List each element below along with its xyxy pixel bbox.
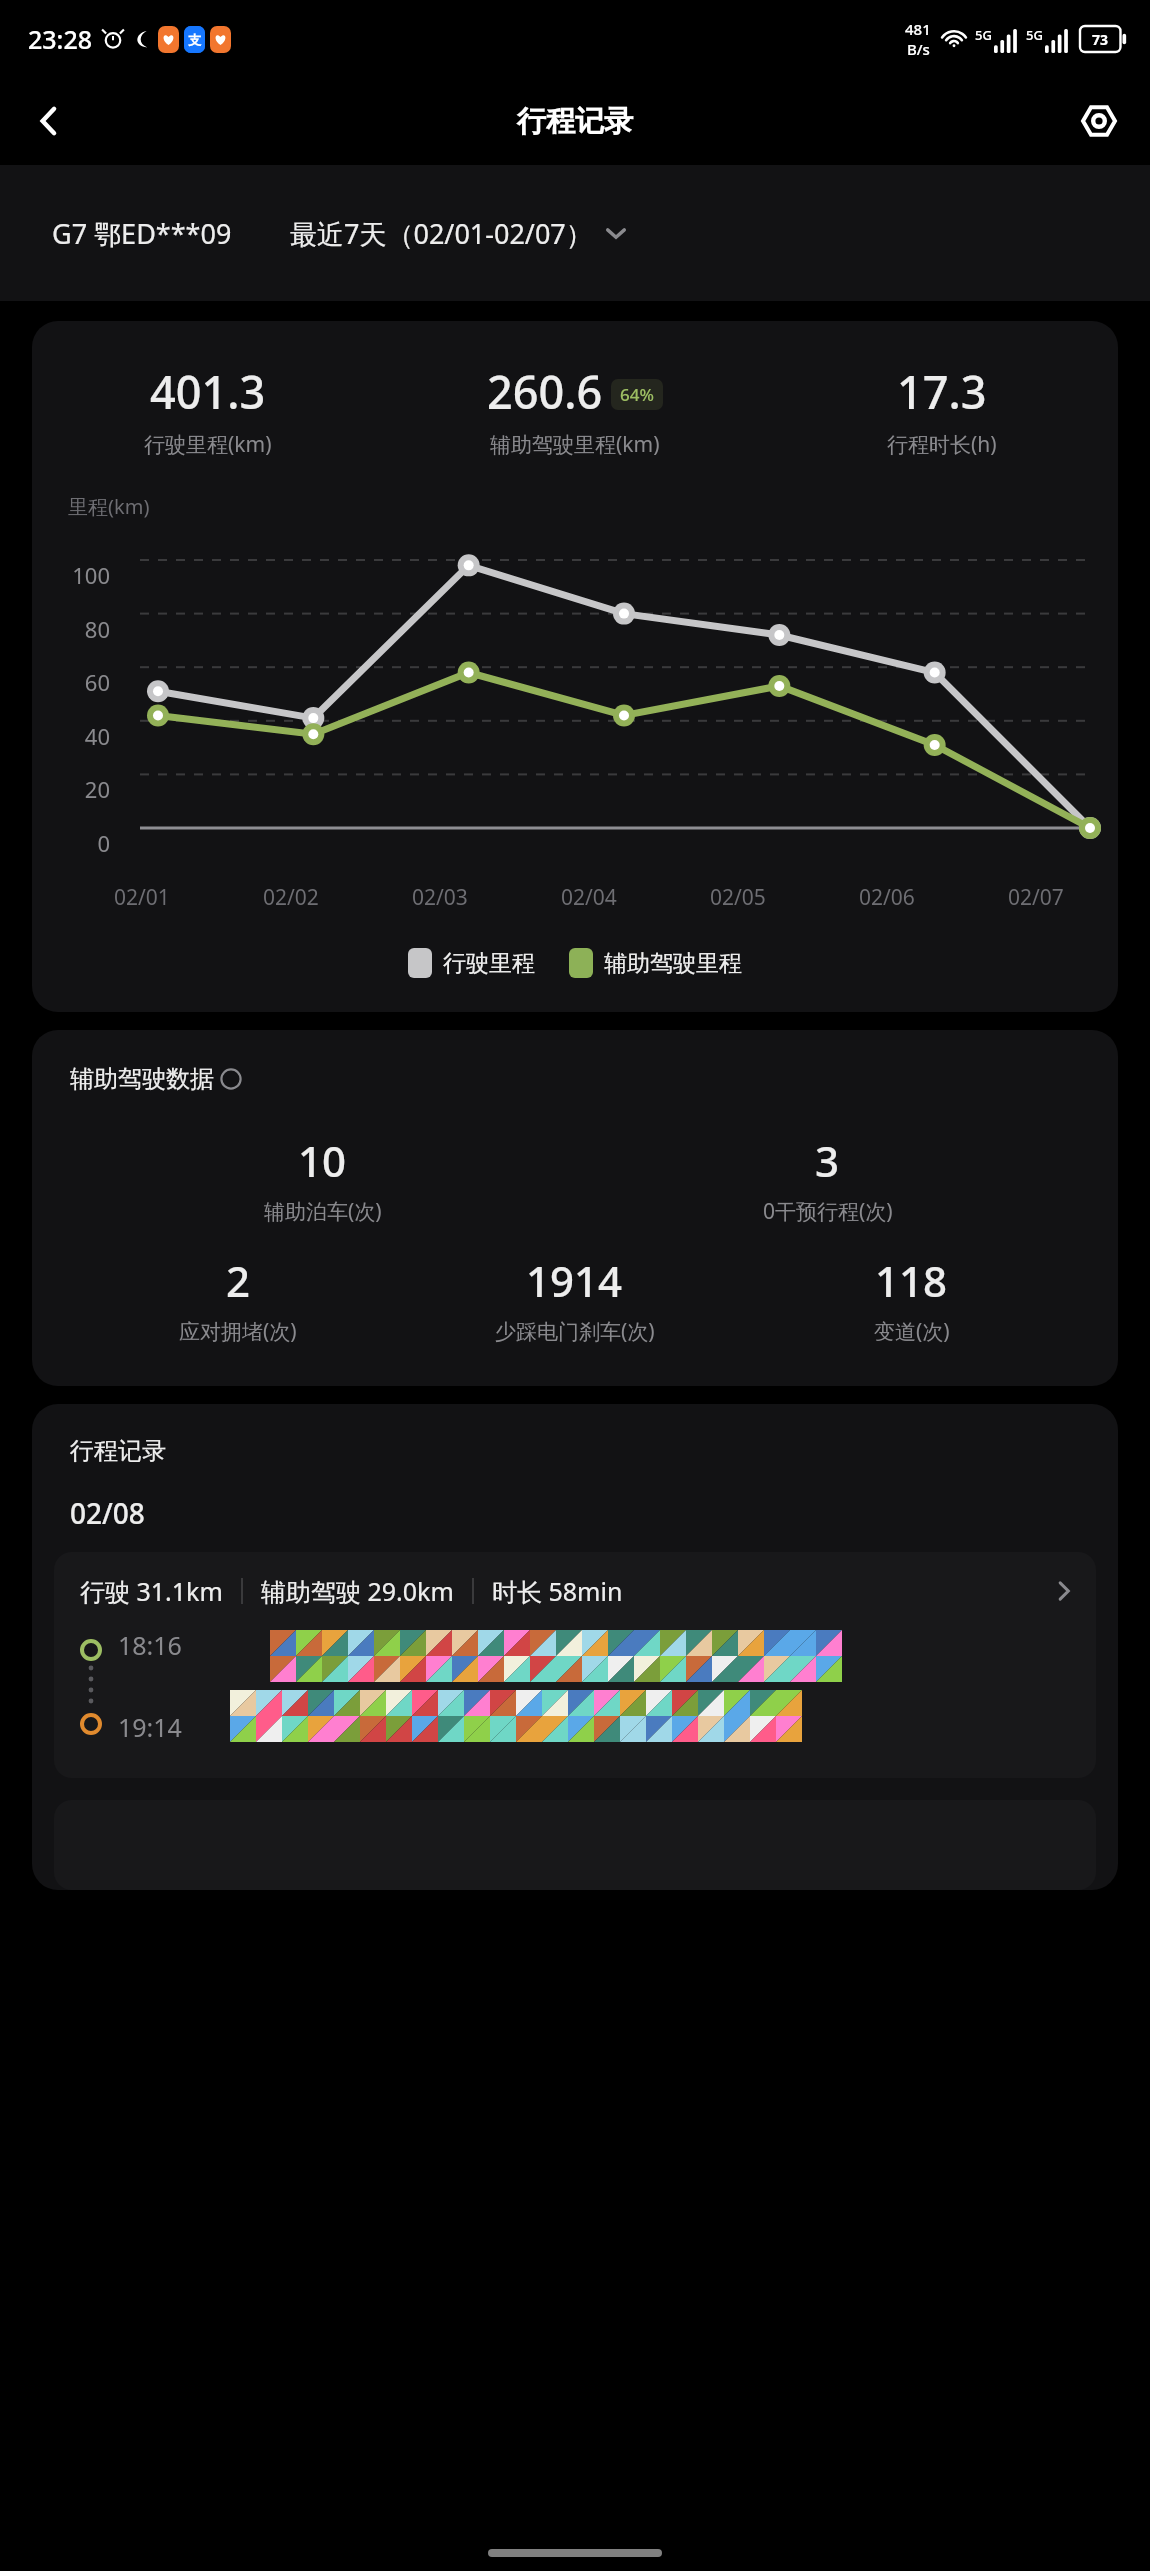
staticText: 行程记录 <box>517 103 633 140</box>
staticText: 里程(km) <box>68 493 150 520</box>
staticText: 辅助驾驶 29.0km <box>261 1574 454 1608</box>
staticText: 时长 58min <box>492 1574 623 1608</box>
staticText: 辅助驾驶里程(km) <box>490 430 660 459</box>
staticText: 02/03 <box>412 883 468 912</box>
staticText: 辅助驾驶数据 <box>70 1064 214 1094</box>
staticText: 18:16 <box>118 1628 182 1662</box>
button[interactable]: 辅助驾驶数据 <box>70 1064 242 1094</box>
staticText: 17.3 <box>897 361 987 422</box>
staticText: 02/08 <box>70 1494 145 1532</box>
staticText: 最近7天（02/01-02/07） <box>290 215 593 252</box>
staticText: 64% <box>620 383 654 406</box>
staticText: 60 <box>84 667 110 697</box>
staticText: 5G <box>975 26 992 44</box>
button[interactable]: 行驶 31.1km <box>54 1552 1096 1778</box>
staticText: 260.6 <box>487 361 603 422</box>
staticText: 0 <box>97 828 110 858</box>
staticText: 行驶里程 <box>443 949 535 978</box>
button[interactable]: G7 鄂ED***09 <box>0 165 1150 301</box>
staticText: G7 鄂ED***09 <box>52 215 232 252</box>
staticText: 支 <box>188 32 201 48</box>
staticText: 118 <box>875 1252 948 1309</box>
staticText: 辅助驾驶里程 <box>604 949 742 978</box>
staticText: 73 <box>1092 30 1109 49</box>
staticText: 行驶里程(km) <box>144 430 272 459</box>
staticText: 481 <box>905 19 931 39</box>
staticText: 23:28 <box>28 22 93 56</box>
staticText: 80 <box>84 614 110 644</box>
staticText: 行程时长(h) <box>887 430 997 459</box>
staticText: 少踩电门刹车(次) <box>495 1317 655 1346</box>
staticText: 行程记录 <box>70 1436 166 1466</box>
staticText: 变道(次) <box>874 1317 950 1346</box>
staticText: 1914 <box>526 1252 623 1309</box>
staticText: B/s <box>907 39 930 59</box>
staticText: 行驶 31.1km <box>80 1574 223 1608</box>
staticText: 2 <box>226 1252 251 1309</box>
staticText: 40 <box>84 721 110 751</box>
staticText: 401.3 <box>150 361 266 422</box>
staticText: 02/07 <box>1008 883 1064 912</box>
staticText: 02/04 <box>561 883 617 912</box>
staticText: 02/01 <box>114 883 170 912</box>
staticText: 100 <box>72 560 110 590</box>
staticText: 5G <box>1026 26 1043 44</box>
staticText: 02/05 <box>710 883 766 912</box>
staticText: 02/02 <box>263 883 319 912</box>
staticText: 10 <box>298 1132 347 1189</box>
staticText: 3 <box>815 1132 840 1189</box>
staticText: 19:14 <box>118 1710 182 1744</box>
staticText: 02/06 <box>859 883 915 912</box>
staticText: 应对拥堵(次) <box>179 1317 297 1346</box>
staticText: 20 <box>84 774 110 804</box>
button[interactable]: Settings <box>1068 90 1130 152</box>
staticText: 辅助泊车(次) <box>264 1197 382 1226</box>
button[interactable]: Back <box>18 90 80 152</box>
staticText: 0干预行程(次) <box>763 1197 893 1226</box>
